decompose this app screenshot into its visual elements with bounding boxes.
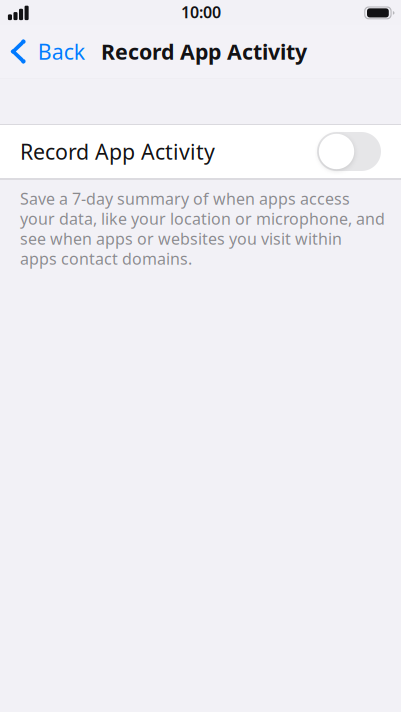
staticText: Record App Activity <box>20 137 215 166</box>
button[interactable]: Back <box>0 28 94 74</box>
button[interactable]: Record App Activity <box>0 125 401 178</box>
staticText: Save a 7-day summary of when apps access… <box>20 188 385 269</box>
staticText: Record App Activity <box>101 37 307 66</box>
staticText: Back <box>38 37 85 66</box>
staticText: 10:00 <box>181 1 221 23</box>
